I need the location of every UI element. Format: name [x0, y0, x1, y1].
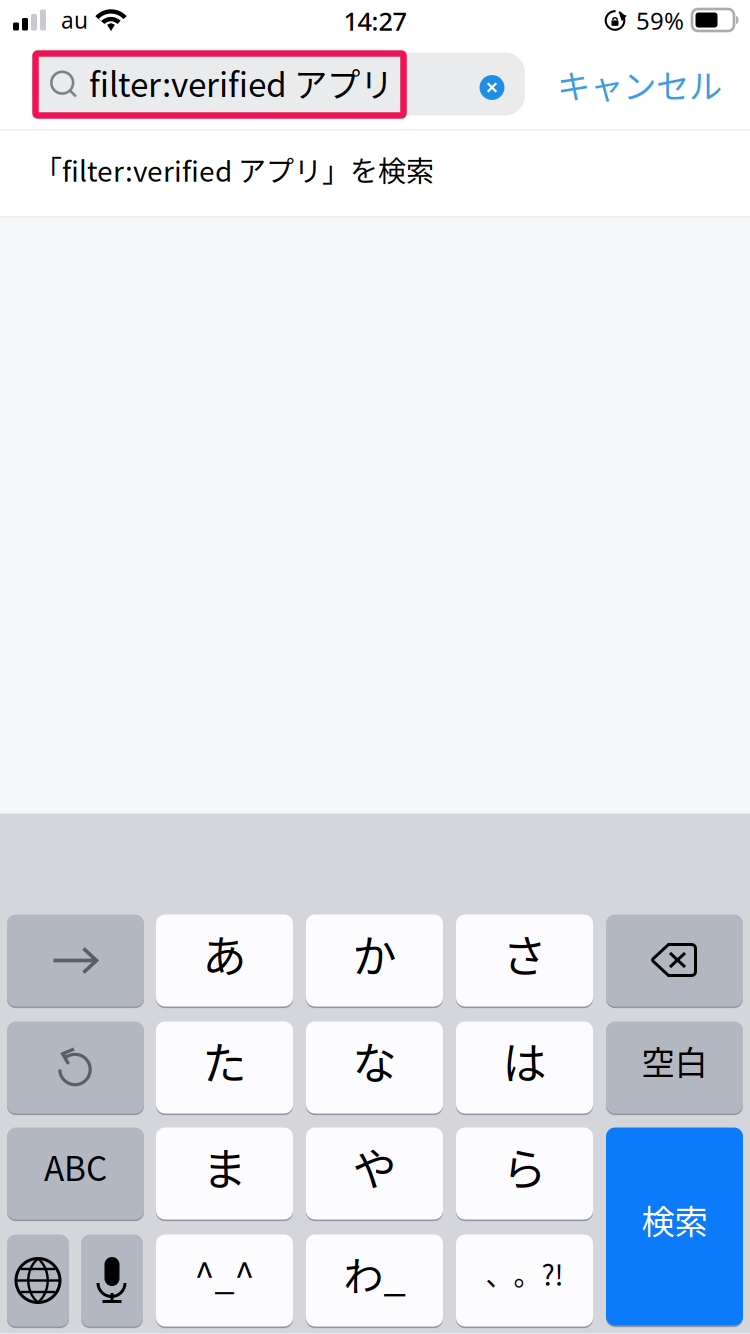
button[interactable]: Next keyboard: [7, 1232, 69, 1328]
button[interactable]: キャンセル: [557, 52, 747, 115]
button[interactable]: ^_^: [156, 1232, 293, 1328]
staticText: キャンセル: [557, 60, 722, 108]
staticText: 、。?!: [485, 1253, 563, 1294]
staticText: ら: [502, 1135, 546, 1198]
button[interactable]: 検索: [606, 1125, 743, 1327]
button[interactable]: 「filter:verified アプリ」を検索: [0, 130, 750, 216]
button[interactable]: や: [306, 1125, 443, 1221]
staticText: わ_: [343, 1244, 405, 1302]
button[interactable]: あ: [156, 912, 293, 1008]
button[interactable]: Dictate: [81, 1232, 143, 1328]
staticText: さ: [502, 922, 546, 985]
staticText: は: [502, 1029, 546, 1092]
button[interactable]: Clear text: [468, 59, 516, 115]
staticText: ま: [202, 1135, 246, 1198]
button[interactable]: Undo: [7, 1019, 144, 1115]
button[interactable]: な: [306, 1019, 443, 1115]
staticText: 59%: [636, 5, 684, 36]
button[interactable]: ら: [456, 1125, 593, 1221]
staticText: た: [202, 1029, 246, 1092]
staticText: な: [352, 1029, 396, 1092]
staticText: 検索: [641, 1195, 707, 1244]
button[interactable]: ABC: [7, 1125, 144, 1221]
staticText: か: [352, 922, 396, 985]
staticText: 「filter:verified アプリ」を検索: [34, 149, 434, 190]
staticText: 14:27: [343, 4, 406, 38]
button[interactable]: か: [306, 912, 443, 1008]
button[interactable]: Next candidate: [7, 912, 144, 1008]
button[interactable]: た: [156, 1019, 293, 1115]
button[interactable]: ま: [156, 1125, 293, 1221]
staticText: や: [352, 1135, 396, 1198]
button[interactable]: 空白: [606, 1019, 743, 1115]
button[interactable]: わ_: [306, 1232, 443, 1328]
staticText: あ: [202, 922, 246, 985]
button[interactable]: は: [456, 1019, 593, 1115]
staticText: au: [61, 5, 88, 35]
staticText: ABC: [44, 1142, 107, 1191]
button[interactable]: さ: [456, 912, 593, 1008]
button[interactable]: 、。?!: [456, 1232, 593, 1328]
staticText: ^_^: [194, 1247, 254, 1299]
staticText: filter:verified アプリ: [89, 58, 393, 107]
button[interactable]: Delete: [606, 912, 743, 1008]
staticText: 空白: [641, 1036, 707, 1085]
